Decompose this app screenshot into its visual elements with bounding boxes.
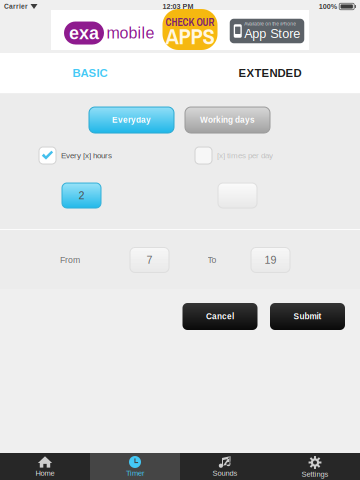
button[interactable]: Home (0, 453, 90, 480)
staticText: mobile (106, 24, 154, 42)
staticText: Every [x] hours (61, 151, 112, 160)
button[interactable] (218, 183, 257, 208)
staticText: Carrier (4, 3, 28, 10)
button[interactable]: Everyday (89, 107, 174, 133)
staticText: Available on the iPhone (244, 21, 296, 27)
staticText: 2 (78, 189, 84, 201)
staticText: Settings (301, 470, 328, 478)
button[interactable]: Working days (185, 107, 270, 133)
button[interactable]: Submit (270, 303, 345, 330)
staticText: CHECK OUR (165, 16, 214, 29)
button[interactable]: 2 (62, 183, 101, 208)
button[interactable]: Timer (90, 453, 180, 480)
staticText: Sounds (212, 469, 237, 477)
button[interactable]: exa (51, 10, 309, 50)
button[interactable]: 7 (130, 247, 169, 272)
staticText: App Store (244, 27, 300, 41)
staticText: 12:03 PM (163, 2, 194, 10)
staticText: [x] times per day (217, 151, 273, 160)
staticText: To (207, 255, 216, 265)
button[interactable]: Cancel (182, 303, 257, 330)
staticText: Home (35, 469, 54, 477)
staticText: 19 (264, 254, 276, 266)
staticText: From (60, 255, 80, 265)
button[interactable]: Settings (270, 453, 360, 480)
staticText: Cancel (206, 312, 234, 321)
button[interactable]: Sounds (180, 453, 270, 480)
staticText: 100% (319, 2, 337, 10)
staticText: EXTENDED (238, 67, 301, 79)
button[interactable]: 19 (251, 247, 290, 272)
staticText: exa (69, 23, 99, 43)
button[interactable]: BASIC (0, 53, 180, 93)
button[interactable]: EXTENDED (180, 53, 360, 93)
staticText: Timer (126, 469, 144, 477)
staticText: 7 (146, 254, 152, 266)
button[interactable]: Every [x] hours (39, 147, 112, 164)
staticText: Submit (293, 312, 321, 321)
staticText: APPS (165, 21, 214, 51)
staticText: Working days (200, 115, 255, 125)
button[interactable]: [x] times per day (195, 147, 273, 164)
staticText: BASIC (72, 67, 107, 79)
staticText: Everyday (112, 115, 151, 125)
